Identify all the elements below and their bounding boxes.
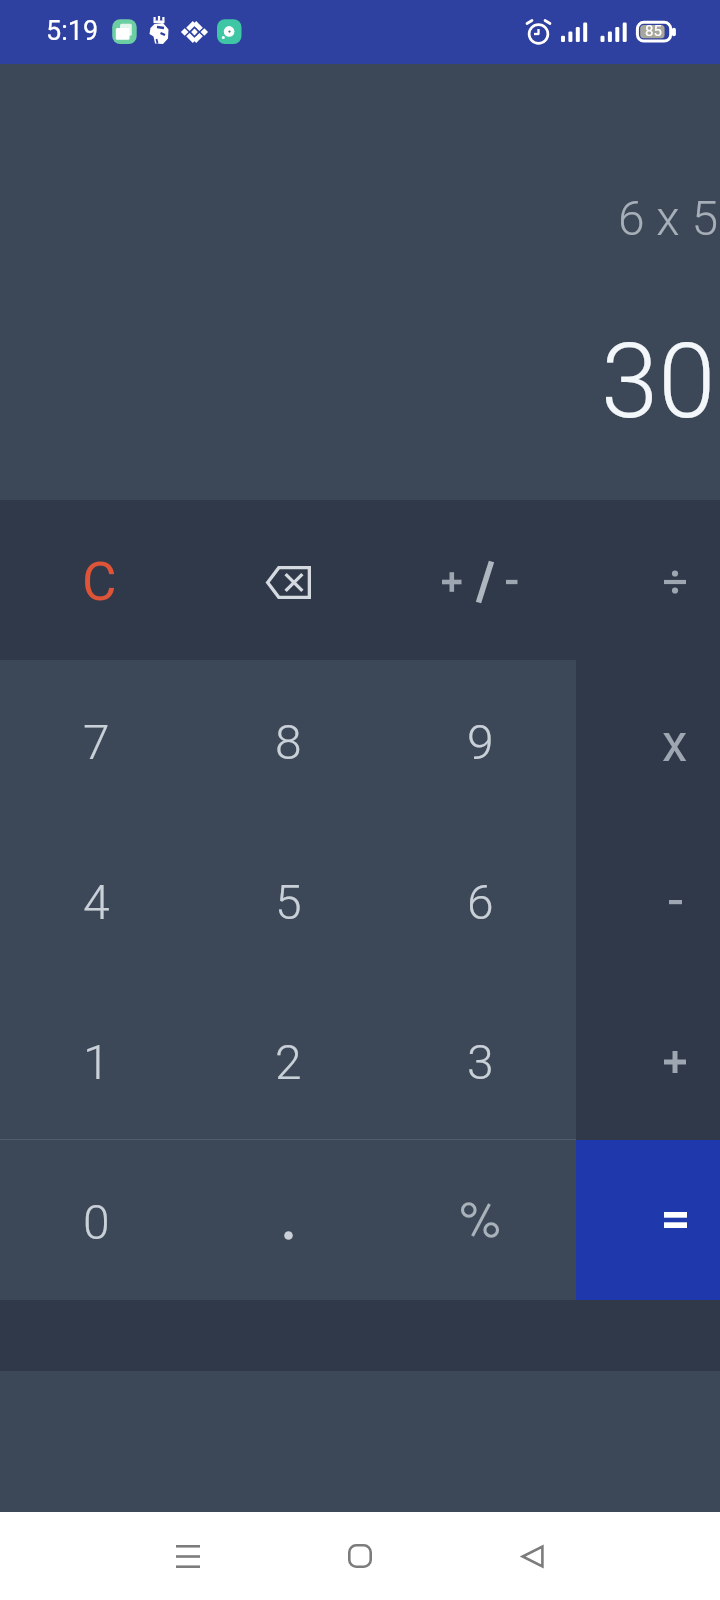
- button[interactable]: 3: [384, 980, 576, 1140]
- staticText: 5:19: [46, 15, 99, 47]
- staticText: 6: [467, 874, 494, 930]
- staticText: x: [662, 714, 688, 774]
- button[interactable]: 4: [0, 820, 192, 980]
- button[interactable]: Minus: [576, 820, 720, 980]
- button[interactable]: 2: [192, 980, 384, 1140]
- staticText: C: [82, 551, 117, 613]
- button[interactable]: 8: [192, 660, 384, 820]
- staticText: 1: [83, 1034, 110, 1090]
- button[interactable]: Divide: [576, 500, 720, 660]
- button[interactable]: Multiply: [576, 660, 720, 820]
- staticText: 8: [275, 714, 302, 770]
- button[interactable]: 1: [0, 980, 192, 1140]
- staticText: 5: [275, 874, 302, 930]
- staticText: 9: [467, 714, 494, 770]
- staticText: 4: [83, 874, 110, 930]
- button[interactable]: 5: [192, 820, 384, 980]
- staticText: 85: [645, 22, 662, 40]
- button[interactable]: Percent: [384, 1140, 576, 1300]
- button[interactable]: Equals: [576, 1140, 720, 1300]
- staticText: 7: [83, 714, 110, 770]
- staticText: 0: [83, 1194, 110, 1250]
- button[interactable]: Plus: [576, 980, 720, 1140]
- button[interactable]: Plus minus: [384, 500, 576, 660]
- button[interactable]: 0: [0, 1140, 192, 1300]
- button[interactable]: Back: [476, 1512, 588, 1600]
- button[interactable]: 6: [384, 820, 576, 980]
- staticText: 6 x 5: [618, 190, 719, 246]
- staticText: 3: [467, 1034, 494, 1090]
- button[interactable]: Recent apps: [132, 1512, 244, 1600]
- button[interactable]: Clear: [0, 500, 192, 660]
- staticText: 2: [275, 1034, 302, 1090]
- button[interactable]: 7: [0, 660, 192, 820]
- button[interactable]: 9: [384, 660, 576, 820]
- button[interactable]: Backspace: [192, 500, 384, 660]
- button[interactable]: Decimal point: [192, 1140, 384, 1300]
- staticText: 30: [601, 321, 716, 442]
- button[interactable]: Home: [304, 1512, 416, 1600]
